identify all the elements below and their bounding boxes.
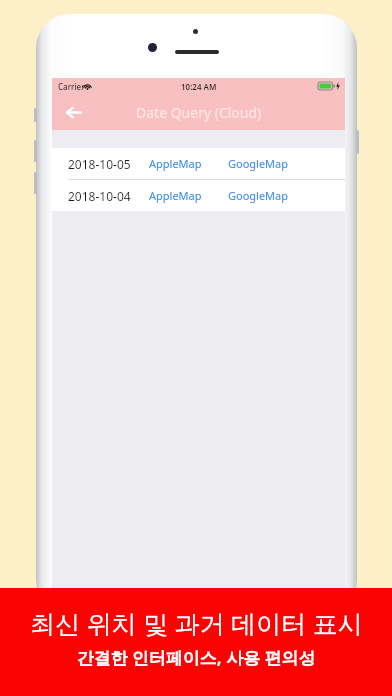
- button[interactable]: AppleMap: [147, 186, 204, 205]
- button[interactable]: AppleMap: [147, 154, 204, 173]
- button[interactable]: Back: [58, 97, 88, 127]
- button[interactable]: 2018-10-04: [52, 180, 345, 211]
- button[interactable]: GoogleMap: [226, 186, 291, 205]
- staticText: AppleMap: [149, 188, 202, 203]
- staticText: GoogleMap: [228, 156, 289, 171]
- staticText: 간결한 인터페이스, 사용 편의성: [76, 646, 316, 669]
- staticText: Date Query (Cloud): [136, 103, 262, 122]
- staticText: 최신 위치 및 과거 데이터 표시: [30, 606, 363, 640]
- button[interactable]: 2018-10-05: [52, 148, 345, 179]
- staticText: 2018-10-05: [68, 156, 131, 172]
- button[interactable]: GoogleMap: [226, 154, 291, 173]
- staticText: 10:24 AM: [181, 81, 217, 92]
- staticText: AppleMap: [149, 156, 202, 171]
- staticText: Carrier: [58, 81, 85, 92]
- staticText: 2018-10-04: [68, 188, 131, 204]
- staticText: GoogleMap: [228, 188, 289, 203]
